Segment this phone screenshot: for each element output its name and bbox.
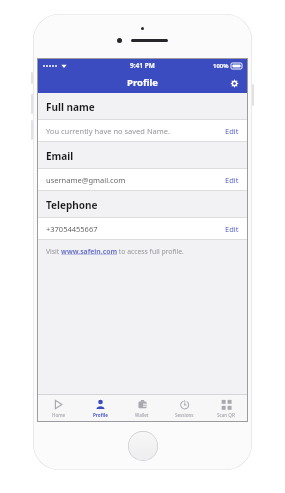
staticText: 100% [213,62,229,70]
staticText: +37054455667 [46,224,98,234]
staticText: Telephone [46,198,98,212]
button[interactable]: Settings [226,75,242,91]
staticText: Edit [225,224,239,234]
button[interactable]: Wallet [121,395,163,421]
button[interactable]: Sessions [163,395,205,421]
staticText: Home [52,412,66,418]
staticText: Wallet [135,412,149,418]
staticText: 9:41 PM [130,61,155,70]
staticText: Email [46,149,74,163]
button[interactable]: Home [38,395,79,421]
button[interactable]: +37054455667 [38,218,247,240]
button[interactable]: Edit [223,173,241,187]
button[interactable]: username@gmail.com [38,169,247,191]
staticText: username@gmail.com [46,175,126,185]
staticText: Profile [127,76,158,89]
button[interactable]: Visit www.safein.com to access full prof… [46,247,184,256]
staticText: Profile [93,412,108,418]
staticText: Sessions [175,412,194,418]
staticText: Scan QR [217,412,235,418]
button[interactable]: You currently have no saved Name. [38,120,247,142]
button[interactable]: Scan QR [205,395,247,421]
staticText: You currently have no saved Name. [46,126,171,136]
button[interactable]: Profile [79,395,121,421]
button[interactable]: Edit [223,222,241,236]
staticText: Full name [46,100,95,114]
staticText: Edit [225,175,239,185]
staticText: Edit [225,126,239,136]
button[interactable]: Edit [223,124,241,138]
